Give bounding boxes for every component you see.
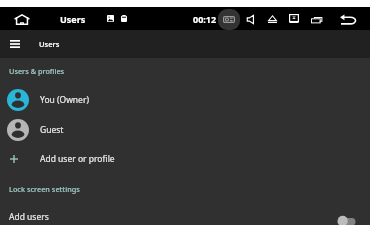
staticText: Add user or profile [40, 153, 115, 165]
button[interactable]: Recents [310, 13, 323, 26]
button[interactable]: Screen off [287, 12, 300, 25]
button: Users & profiles [9, 66, 65, 76]
button[interactable]: Add user or profile [0, 146, 370, 171]
button[interactable]: Media [218, 9, 240, 30]
button[interactable]: Gallery [104, 12, 117, 25]
button[interactable]: Back [338, 12, 359, 27]
button[interactable]: You (Owner) [0, 85, 370, 115]
staticText: Lock screen settings [9, 184, 80, 194]
staticText: Add users [9, 211, 49, 223]
staticText: Users [60, 13, 86, 25]
button[interactable]: Volume [244, 13, 257, 26]
button[interactable]: Guest [0, 115, 370, 145]
button[interactable]: Menu [6, 36, 23, 52]
button[interactable]: Add users [0, 206, 370, 228]
staticText: Users [39, 39, 60, 49]
staticText: Guest [40, 124, 64, 136]
button[interactable]: Eject [266, 12, 279, 25]
button[interactable]: Home [11, 11, 33, 27]
staticText: 00:12 [193, 13, 217, 25]
staticText: You (Owner) [40, 94, 89, 106]
button[interactable]: Notes [117, 12, 130, 25]
button[interactable]: Add users toggle [332, 211, 362, 229]
staticText: Users & profiles [9, 66, 65, 76]
